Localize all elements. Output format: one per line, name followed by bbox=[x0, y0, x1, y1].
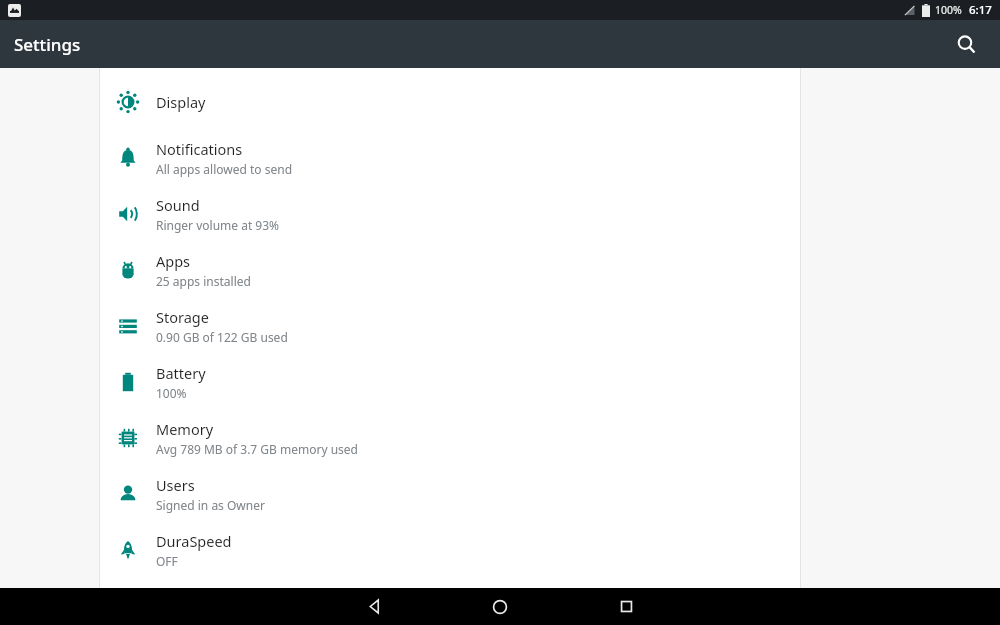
staticText: Signed in as Owner bbox=[156, 497, 265, 513]
staticText: OFF bbox=[156, 553, 178, 569]
staticText: Storage bbox=[156, 307, 209, 327]
staticText: Display bbox=[156, 92, 206, 112]
button[interactable]: Battery bbox=[99, 354, 801, 410]
button[interactable]: Apps bbox=[99, 242, 801, 298]
staticText: All apps allowed to send bbox=[156, 161, 293, 177]
staticText: Settings bbox=[14, 33, 81, 56]
button[interactable]: Notifications bbox=[99, 130, 801, 186]
button[interactable]: Back bbox=[311, 588, 437, 625]
staticText: 25 apps installed bbox=[156, 273, 251, 289]
staticText: DuraSpeed bbox=[156, 531, 232, 551]
button[interactable]: DuraSpeed bbox=[99, 522, 801, 578]
staticText: Memory bbox=[156, 419, 214, 439]
button[interactable]: Search bbox=[946, 24, 986, 64]
button[interactable]: Recent apps bbox=[563, 588, 689, 625]
button[interactable]: Display bbox=[99, 74, 801, 130]
staticText: Avg 789 MB of 3.7 GB memory used bbox=[156, 441, 358, 457]
staticText: 100% bbox=[156, 385, 187, 401]
staticText: 6:17 bbox=[969, 2, 992, 18]
button[interactable]: Storage bbox=[99, 298, 801, 354]
button[interactable]: Users bbox=[99, 466, 801, 522]
staticText: Notifications bbox=[156, 139, 243, 159]
staticText: Ringer volume at 93% bbox=[156, 217, 280, 233]
staticText: Users bbox=[156, 475, 195, 495]
staticText: Apps bbox=[156, 251, 191, 271]
staticText: Battery bbox=[156, 363, 206, 383]
button[interactable]: Home bbox=[437, 588, 563, 625]
button[interactable]: Sound bbox=[99, 186, 801, 242]
staticText: 100% bbox=[935, 3, 962, 17]
staticText: Sound bbox=[156, 195, 200, 215]
staticText: 0.90 GB of 122 GB used bbox=[156, 329, 288, 345]
button[interactable]: Memory bbox=[99, 410, 801, 466]
